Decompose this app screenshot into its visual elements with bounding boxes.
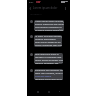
staticText: cillum dolore eu fugiat nulla: [35, 59, 63, 62]
staticText: pariatur excepteur sint: [35, 62, 59, 64]
staticText: henderit in voluptate velit esse: [35, 56, 63, 59]
button[interactable]: Lorem ipsum dolor sit amet, cons: [34, 20, 64, 31]
staticText: 9:41: [29, 1, 34, 4]
staticText: 9:44: [59, 61, 63, 64]
staticText: nostrud exercitation ullamco la: [35, 38, 62, 41]
button[interactable]: Ut enim ad minim veniam, quis: [34, 35, 62, 47]
button[interactable]: Recent apps: [57, 89, 62, 94]
button[interactable]: Navigate up: [28, 5, 33, 11]
staticText: et dolore magna aliqua enim ad: [35, 29, 64, 31]
staticText: Duis aute irure dolor in repre: [35, 53, 63, 56]
staticText: mod tempor incididunt ut labore: [35, 26, 64, 29]
button[interactable]: More options: [63, 5, 68, 11]
staticText: Lorem ipsum dolor sit amet, cons: [35, 20, 64, 23]
staticText: modo consequat duis aute iru: [35, 44, 62, 47]
staticText: Lorem ipsum dolor: [33, 6, 58, 10]
staticText: YESTERDAY: [30, 13, 42, 16]
staticText: Ut enim ad minim veniam, quis: [35, 35, 62, 38]
staticText: 9:47: [59, 78, 63, 80]
button[interactable]: Excepteur sint occaecat cupi: [34, 69, 63, 80]
button[interactable]: Back: [35, 89, 40, 94]
staticText: datat non proident, sunt in: [35, 72, 63, 75]
staticText: deserunt mollit anim id est: [35, 78, 63, 80]
staticText: ectetur adipiscing elit sed do eius: [35, 23, 64, 26]
staticText: boris nisi ut aliquip ex ea com: [35, 41, 62, 44]
button[interactable]: Home: [46, 89, 51, 94]
button[interactable]: Duis aute irure dolor in repre: [34, 53, 63, 64]
staticText: culpa qui officia: [35, 75, 52, 78]
staticText: 9:41: [59, 28, 63, 31]
button[interactable]: Lorem ipsum dolor: [33, 5, 58, 11]
staticText: 9:43: [58, 44, 62, 47]
staticText: Excepteur sint occaecat cupi: [35, 69, 63, 72]
